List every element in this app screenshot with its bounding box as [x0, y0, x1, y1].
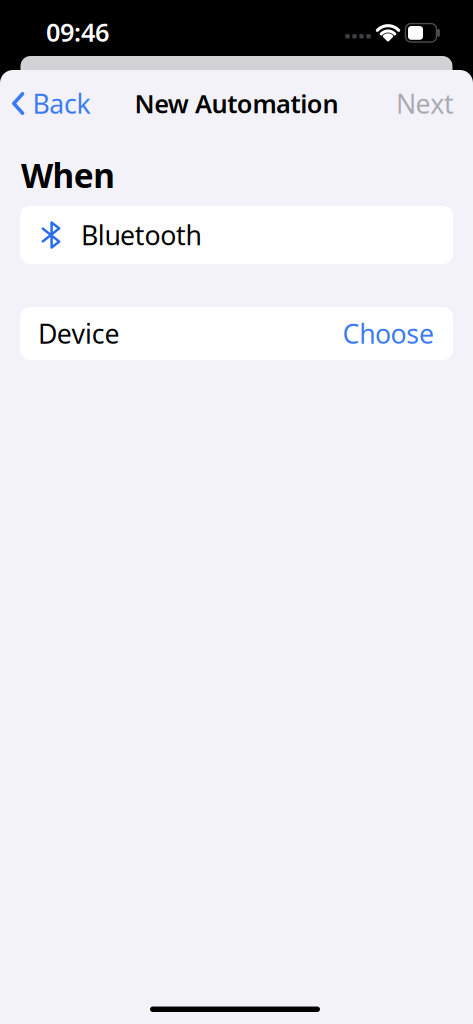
- staticText: Back: [32, 86, 91, 121]
- button[interactable]: Bluetooth: [20, 206, 453, 264]
- staticText: Device: [38, 316, 119, 351]
- button[interactable]: Next: [396, 86, 454, 121]
- staticText: Bluetooth: [81, 217, 202, 253]
- staticText: Choose: [342, 316, 434, 351]
- staticText: Next: [396, 86, 454, 121]
- button[interactable]: Back: [12, 86, 91, 121]
- staticText: 09:46: [46, 15, 109, 49]
- staticText: New Automation: [135, 87, 338, 120]
- button[interactable]: Device: [20, 307, 453, 360]
- staticText: When: [21, 153, 115, 197]
